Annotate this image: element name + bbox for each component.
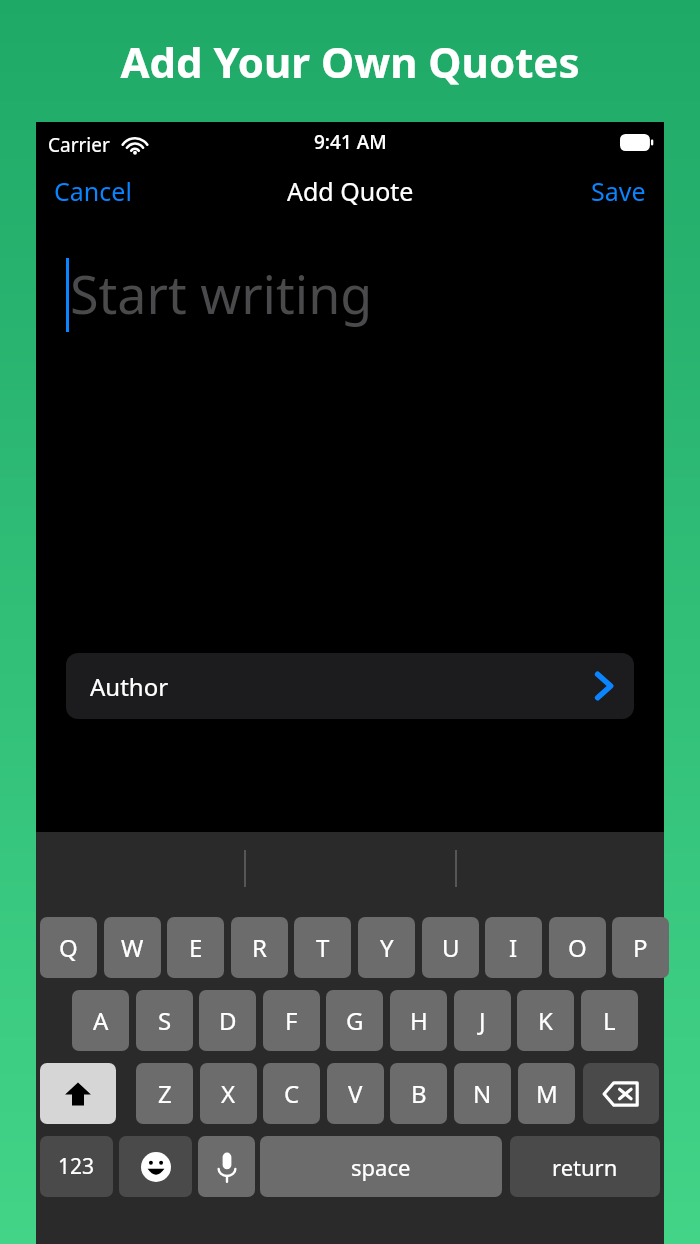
button[interactable]: 123 [40, 1136, 113, 1197]
button[interactable]: B [390, 1063, 447, 1124]
staticText: N [473, 1077, 492, 1110]
staticText: K [538, 1004, 553, 1037]
staticText: Save [591, 174, 646, 208]
staticText: P [633, 931, 648, 964]
button[interactable]: space [260, 1136, 502, 1197]
staticText: L [603, 1004, 616, 1037]
staticText: return [552, 1152, 618, 1182]
staticText: Add Your Own Quotes [120, 33, 580, 90]
staticText: 123 [58, 1152, 95, 1181]
staticText: Start writing [70, 258, 373, 329]
button[interactable]: Cancel [50, 168, 136, 214]
staticText: Q [59, 931, 78, 964]
button[interactable]: Start writing [36, 222, 664, 832]
button[interactable]: H [390, 990, 447, 1051]
button[interactable]: Q [40, 917, 97, 978]
button[interactable]: F [263, 990, 320, 1051]
staticText: U [442, 931, 460, 964]
staticText: I [509, 931, 518, 964]
staticText: V [348, 1077, 363, 1110]
staticText: A [93, 1004, 109, 1037]
staticText: R [252, 931, 267, 964]
staticText: Author [90, 670, 169, 703]
staticText: E [189, 931, 203, 964]
button[interactable]: U [422, 917, 479, 978]
staticText: Cancel [54, 174, 132, 208]
button[interactable]: C [263, 1063, 320, 1124]
button[interactable]: Y [358, 917, 415, 978]
button[interactable]: Save [587, 168, 650, 214]
button[interactable]: Delete [583, 1063, 659, 1124]
button[interactable]: Dictation [198, 1136, 255, 1197]
button[interactable]: V [327, 1063, 384, 1124]
button[interactable]: D [199, 990, 256, 1051]
button[interactable]: Author [66, 653, 634, 719]
button[interactable]: A [72, 990, 129, 1051]
button[interactable]: X [200, 1063, 257, 1124]
button[interactable]: K [517, 990, 574, 1051]
button[interactable]: L [581, 990, 638, 1051]
button[interactable]: W [104, 917, 161, 978]
button[interactable]: O [549, 917, 606, 978]
staticText: Z [158, 1077, 172, 1110]
button[interactable]: I [485, 917, 542, 978]
staticText: W [121, 931, 144, 964]
staticText: M [536, 1077, 558, 1110]
staticText: J [479, 1004, 486, 1037]
staticText: T [316, 931, 330, 964]
staticText: Carrier [48, 132, 110, 158]
staticText: D [219, 1004, 237, 1037]
staticText: H [410, 1004, 428, 1037]
staticText: G [346, 1004, 364, 1037]
staticText: Y [380, 931, 394, 964]
button[interactable]: P [612, 917, 669, 978]
staticText: 9:41 AM [314, 129, 387, 155]
button[interactable]: T [294, 917, 351, 978]
button[interactable]: N [454, 1063, 511, 1124]
button[interactable]: Z [136, 1063, 193, 1124]
button[interactable]: Emoji [119, 1136, 192, 1197]
staticText: S [158, 1004, 172, 1037]
button[interactable]: R [231, 917, 288, 978]
button[interactable]: Shift [40, 1063, 116, 1124]
staticText: B [411, 1077, 427, 1110]
button[interactable]: S [136, 990, 193, 1051]
staticText: space [351, 1152, 411, 1182]
button[interactable]: G [326, 990, 383, 1051]
button[interactable]: return [510, 1136, 660, 1197]
staticText: F [285, 1004, 298, 1037]
staticText: C [284, 1077, 300, 1110]
staticText: O [568, 931, 587, 964]
button[interactable]: J [454, 990, 511, 1051]
button[interactable]: M [518, 1063, 575, 1124]
button[interactable]: E [167, 917, 224, 978]
staticText: X [221, 1077, 236, 1110]
staticText: Add Quote [287, 174, 414, 208]
